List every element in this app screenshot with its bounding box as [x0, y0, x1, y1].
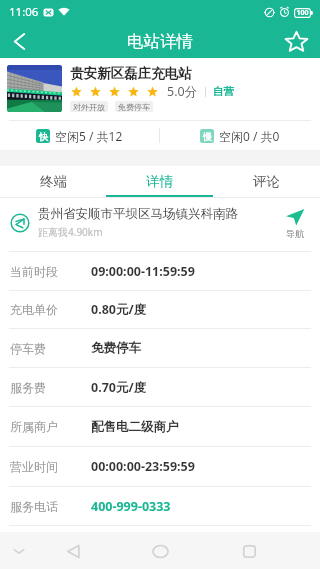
staticText: 空闲5 / 共12 — [55, 128, 123, 144]
staticText: 贵安新区磊庄充电站 — [70, 65, 192, 82]
button[interactable]: 营业时间 — [0, 447, 320, 486]
staticText: 评论 — [253, 173, 280, 190]
staticText: 充电单价 — [10, 302, 91, 317]
staticText: 营业时间 — [10, 459, 91, 474]
staticText: 所属商户 — [10, 419, 91, 434]
staticText: 停车费 — [10, 341, 91, 356]
staticText: 00:00:00-23:59:59 — [91, 458, 195, 475]
staticText: 当前时段 — [10, 264, 91, 279]
button[interactable]: 贵州省安顺市平坝区马场镇兴科南路 — [0, 198, 320, 251]
staticText: 11:06 — [9, 4, 39, 20]
staticText: 09:00:00-11:59:59 — [91, 263, 195, 280]
staticText: 对外开放 — [73, 102, 105, 112]
button[interactable]: 导航 — [278, 207, 312, 239]
button[interactable]: Recent apps — [236, 538, 262, 564]
button[interactable]: Back — [0, 24, 38, 58]
button[interactable]: Hide navigation bar — [6, 538, 32, 564]
staticText: 自营 — [213, 85, 234, 98]
button[interactable]: 服务费 — [0, 368, 320, 406]
button[interactable]: 服务电话 — [0, 487, 320, 525]
staticText: 100 — [294, 8, 311, 18]
staticText: 导航 — [286, 228, 304, 239]
button[interactable]: 评论 — [213, 166, 320, 197]
staticText: 距离我4.90km — [38, 225, 103, 239]
staticText: 详情 — [146, 173, 173, 190]
staticText: 电站详情 — [127, 31, 193, 52]
staticText: 免费停车 — [91, 340, 141, 356]
staticText: 快 — [39, 131, 48, 142]
staticText: 配售电二级商户 — [91, 419, 179, 435]
button[interactable]: 当前时段 — [0, 252, 320, 290]
button[interactable]: 充电单价 — [0, 291, 320, 328]
button[interactable]: Back — [60, 538, 86, 564]
staticText: 免费停车 — [118, 102, 150, 112]
staticText: 终端 — [40, 173, 67, 190]
staticText: 0.70元/度 — [91, 379, 147, 396]
button[interactable]: 所属商户 — [0, 407, 320, 446]
button[interactable]: Home — [147, 538, 173, 564]
button[interactable]: 详情 — [106, 166, 213, 197]
button[interactable]: 慢 — [160, 128, 320, 144]
staticText: 0.80元/度 — [91, 301, 147, 318]
staticText: 400-999-0333 — [91, 498, 171, 515]
staticText: 服务电话 — [10, 499, 91, 514]
staticText: 空闲0 / 共0 — [219, 128, 280, 144]
button[interactable]: 停车费 — [0, 329, 320, 367]
button[interactable]: 快 — [0, 128, 159, 144]
staticText: 5.0分 — [167, 83, 198, 100]
staticText: 服务费 — [10, 380, 91, 395]
button[interactable]: 终端 — [0, 166, 106, 197]
staticText: 贵州省安顺市平坝区马场镇兴科南路 — [38, 206, 238, 222]
staticText: 慢 — [203, 131, 212, 142]
button[interactable]: Favorite — [272, 24, 320, 58]
